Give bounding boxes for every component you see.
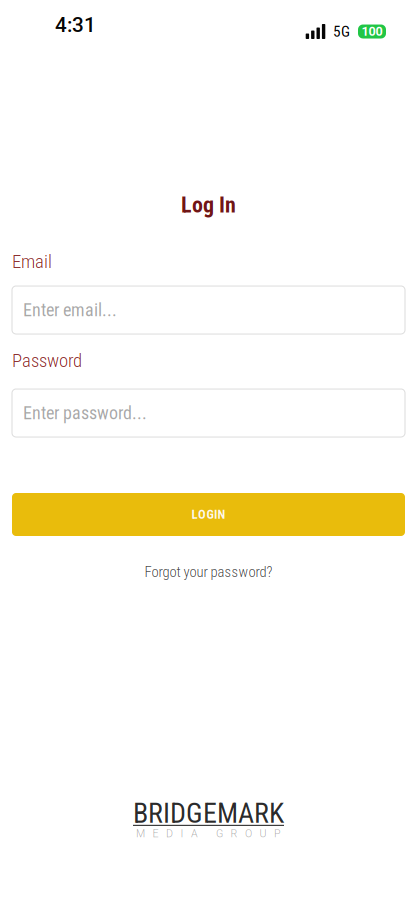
- staticText: MEDIA GROUP: [136, 827, 281, 840]
- staticText: Email: [12, 251, 52, 272]
- staticText: 5G: [333, 22, 350, 40]
- staticText: LOGIN: [191, 507, 225, 522]
- staticText: BRIDGEMARK: [133, 797, 284, 830]
- button[interactable]: LOGIN: [12, 493, 405, 536]
- staticText: Enter email...: [23, 299, 117, 321]
- staticText: Enter password...: [23, 402, 147, 424]
- staticText: Log In: [181, 192, 236, 218]
- staticText: 100: [361, 24, 382, 39]
- staticText: 4:31: [55, 13, 96, 37]
- staticText: Password: [12, 350, 82, 371]
- staticText: Forgot your password?: [144, 563, 272, 581]
- button[interactable]: Forgot your password?: [12, 564, 405, 580]
